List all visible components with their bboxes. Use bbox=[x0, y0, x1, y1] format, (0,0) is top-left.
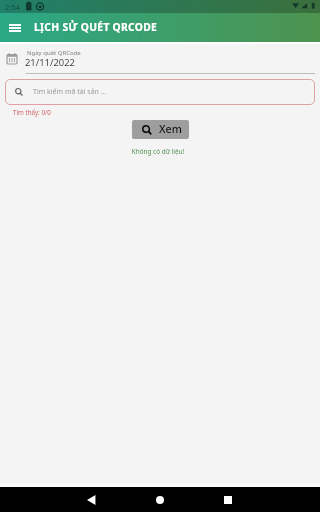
button[interactable]: Home bbox=[140, 487, 180, 512]
staticText: 21/11/2022 bbox=[25, 56, 75, 69]
staticText: Tìm thấy: 0/0 bbox=[13, 108, 51, 116]
button[interactable]: Back bbox=[71, 487, 111, 512]
staticText: LỊCH SỬ QUÉT QRCODE bbox=[34, 20, 158, 34]
staticText: Không có dữ liệu! bbox=[0, 147, 318, 156]
button[interactable]: Menu bbox=[1, 14, 29, 42]
staticText: 2:54 bbox=[5, 2, 20, 12]
button[interactable]: Ngày quét QRCode bbox=[0, 46, 320, 76]
staticText: Xem bbox=[159, 122, 182, 137]
staticText: Tìm kiếm mã tài sản ... bbox=[33, 87, 107, 97]
staticText: Ngày quét QRCode bbox=[27, 49, 81, 57]
button[interactable]: Recents bbox=[208, 487, 248, 512]
button[interactable]: Xem bbox=[132, 120, 189, 139]
button[interactable]: Tìm kiếm mã tài sản ... bbox=[5, 79, 315, 105]
